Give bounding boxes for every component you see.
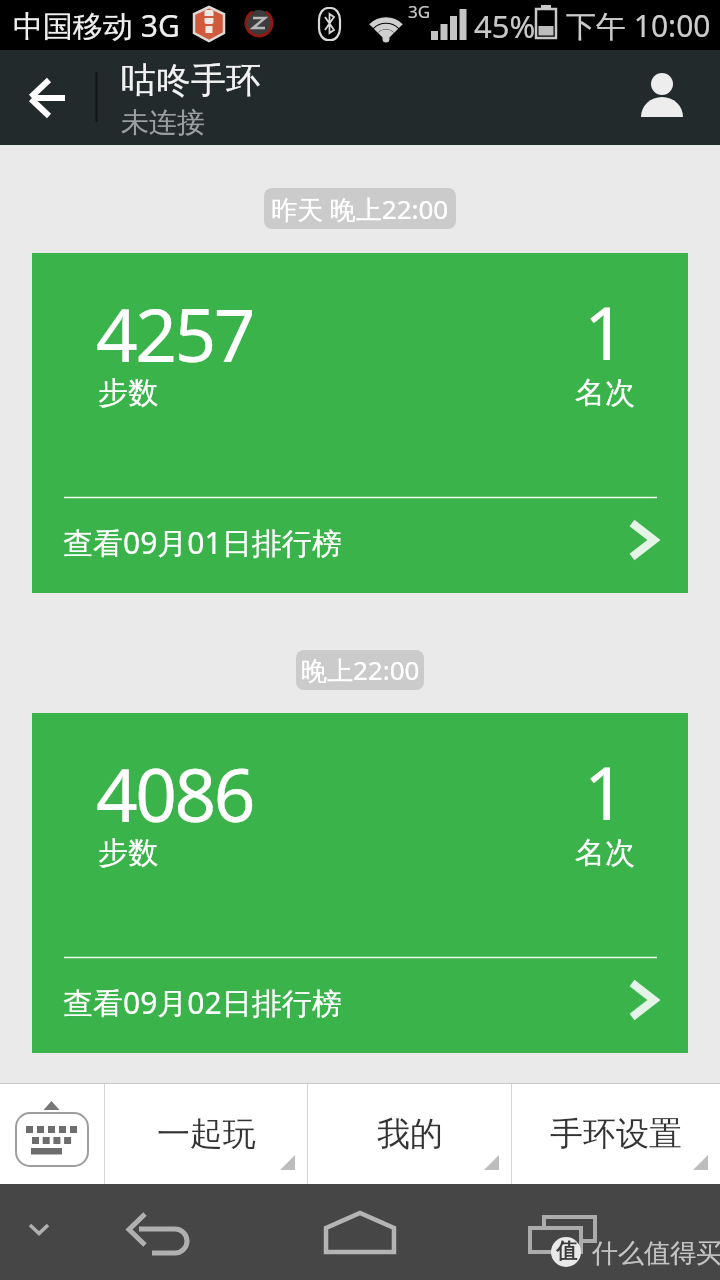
button[interactable]: 我的 xyxy=(308,1084,511,1184)
staticText: 未连接 xyxy=(121,105,205,140)
staticText: 我的 xyxy=(377,1113,443,1155)
staticText: 名次 xyxy=(575,374,635,412)
button[interactable]: 手环设置 xyxy=(512,1084,720,1184)
staticText: 45% xyxy=(474,5,536,47)
staticText: 晚上22:00 xyxy=(301,652,420,688)
button[interactable]: 4086 xyxy=(32,713,688,1053)
staticText: 什么值得买 xyxy=(592,1237,720,1270)
button[interactable] xyxy=(320,1194,400,1270)
staticText: 3G xyxy=(408,0,431,23)
staticText: 昨天 晚上22:00 xyxy=(271,191,449,227)
staticText: 1 xyxy=(584,282,626,381)
staticText: 手环设置 xyxy=(550,1113,682,1155)
staticText: 查看09月02日排行榜 xyxy=(63,982,342,1023)
staticText: 步数 xyxy=(98,374,158,412)
staticText: 4086 xyxy=(96,744,254,843)
staticText: 名次 xyxy=(575,834,635,872)
button[interactable] xyxy=(0,1084,104,1184)
staticText: 下午 10:00 xyxy=(566,5,711,46)
button[interactable]: 4257 xyxy=(32,253,688,593)
staticText: 中国移动 3G xyxy=(13,5,180,46)
staticText: 步数 xyxy=(98,834,158,872)
staticText: 4257 xyxy=(96,284,254,383)
button[interactable] xyxy=(520,1194,600,1270)
button[interactable] xyxy=(625,50,720,145)
button[interactable] xyxy=(0,50,80,145)
staticText: 一起玩 xyxy=(157,1113,256,1155)
button[interactable]: 一起玩 xyxy=(105,1084,307,1184)
button[interactable] xyxy=(120,1194,200,1270)
staticText: 查看09月01日排行榜 xyxy=(63,522,342,563)
staticText: 值 xyxy=(556,1238,577,1264)
button[interactable] xyxy=(8,1202,70,1264)
staticText: 1 xyxy=(584,742,626,841)
staticText: 咕咚手环 xyxy=(121,58,261,102)
